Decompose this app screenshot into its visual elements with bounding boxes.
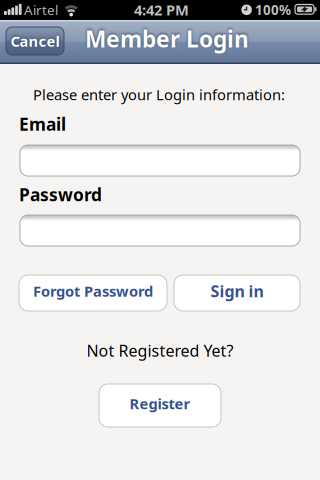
staticText: Cancel: [10, 31, 59, 51]
staticText: 100%: [255, 1, 291, 19]
staticText: Member Login: [85, 24, 249, 54]
staticText: Not Registered Yet?: [86, 340, 233, 361]
staticText: Forgot Password: [33, 281, 153, 301]
staticText: Password: [19, 183, 102, 206]
staticText: 4:42 PM: [134, 0, 189, 20]
staticText: Register: [129, 394, 190, 413]
button[interactable]: Forgot Password: [19, 275, 167, 311]
staticText: Email: [19, 112, 66, 135]
staticText: Please enter your Login information:: [33, 85, 285, 104]
button[interactable]: Cancel: [6, 27, 64, 55]
button[interactable]: Sign in: [174, 275, 300, 311]
button[interactable]: Register: [99, 384, 221, 427]
staticText: Sign in: [210, 280, 263, 302]
staticText: Airtel: [24, 1, 58, 19]
